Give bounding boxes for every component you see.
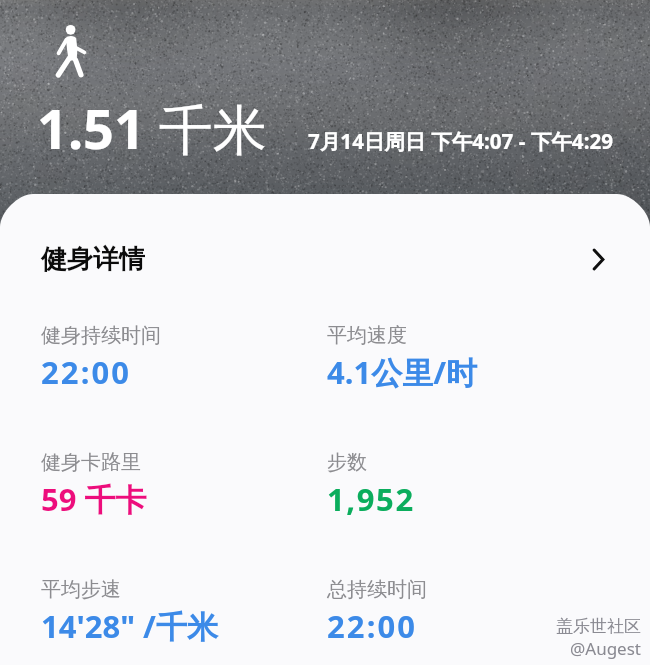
button[interactable]: 总持续时间 <box>327 577 427 647</box>
staticText: 盖乐世社区 <box>556 616 641 637</box>
staticText: 健身持续时间 <box>41 323 161 348</box>
staticText: 7月14日周日 下午4:07 - 下午4:29 <box>308 127 613 155</box>
staticText: 步数 <box>327 450 367 475</box>
staticText: 22:00 <box>327 605 418 647</box>
staticText: 总持续时间 <box>327 577 427 602</box>
other: View details <box>593 249 604 270</box>
staticText: 4.1公里/时 <box>327 351 478 393</box>
staticText: 1,952 <box>327 478 415 520</box>
button[interactable]: 健身卡路里 <box>41 450 327 520</box>
staticText: 22:00 <box>41 351 132 393</box>
staticText: 14'28" /千米 <box>41 605 218 647</box>
button[interactable]: 平均步速 <box>41 577 327 647</box>
button[interactable]: 步数 <box>327 450 415 520</box>
button[interactable]: 健身详情 <box>0 194 650 296</box>
staticText: 平均速度 <box>327 323 407 348</box>
staticText: 1.51 千米 <box>37 91 267 165</box>
staticText: 59 千卡 <box>41 478 147 520</box>
button[interactable]: 平均速度 <box>327 323 478 393</box>
staticText: 健身卡路里 <box>41 450 141 475</box>
staticText: @Augest <box>570 637 641 660</box>
button[interactable]: 健身持续时间 <box>41 323 327 393</box>
staticText: 健身详情 <box>41 243 145 276</box>
staticText: 平均步速 <box>41 577 121 602</box>
other: Walking workout <box>54 22 90 80</box>
